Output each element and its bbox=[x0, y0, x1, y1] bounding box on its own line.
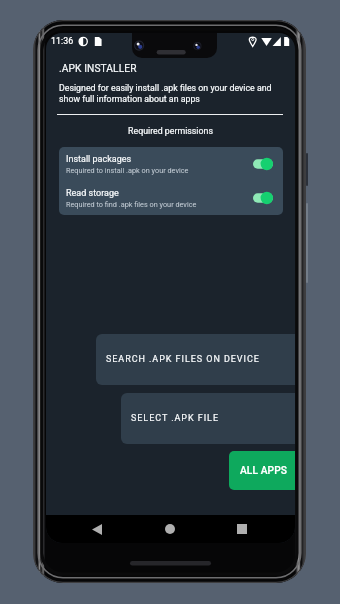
staticText: Read storage bbox=[66, 188, 119, 199]
staticText: Required to install .apk on your device bbox=[66, 166, 189, 175]
button[interactable]: Recent apps bbox=[229, 516, 255, 542]
button[interactable]: Toggle Read storage bbox=[253, 191, 273, 205]
button[interactable]: Install packages bbox=[59, 147, 283, 181]
staticText: Required permissions bbox=[46, 126, 295, 136]
staticText: ALL APPS bbox=[240, 465, 288, 477]
button[interactable]: ALL APPS bbox=[229, 451, 295, 490]
button[interactable]: Read storage bbox=[59, 181, 283, 215]
button[interactable]: Toggle Install packages bbox=[253, 157, 273, 171]
staticText: SELECT .APK FILE bbox=[131, 413, 219, 424]
button[interactable]: Back bbox=[84, 516, 110, 542]
button[interactable]: SELECT .APK FILE bbox=[121, 393, 295, 444]
staticText: .APK INSTALLER bbox=[59, 63, 137, 75]
staticText: Required to find .apk files on your devi… bbox=[66, 200, 197, 209]
staticText: 11:36 bbox=[51, 36, 74, 46]
staticText: Designed for easily install .apk files o… bbox=[59, 83, 275, 104]
staticText: SEARCH .APK FILES ON DEVICE bbox=[106, 354, 260, 365]
button[interactable]: Home bbox=[157, 516, 183, 542]
button[interactable]: SEARCH .APK FILES ON DEVICE bbox=[96, 334, 295, 385]
staticText: Install packages bbox=[66, 154, 132, 165]
